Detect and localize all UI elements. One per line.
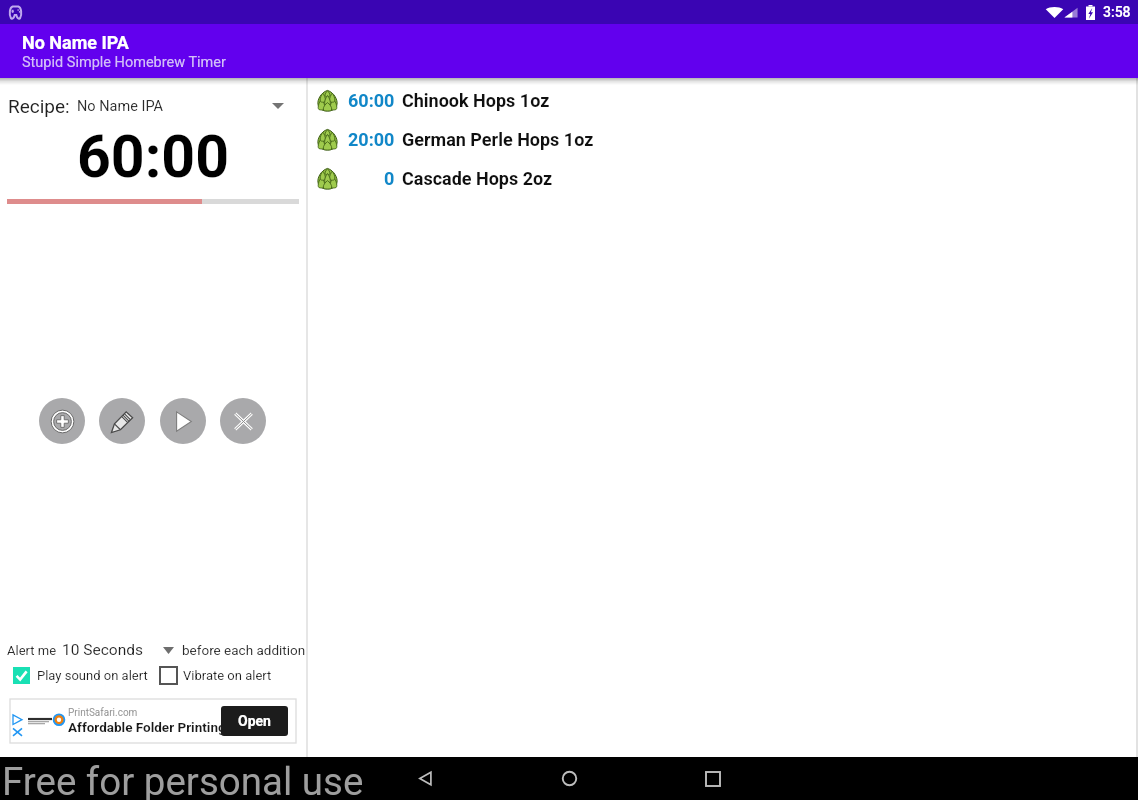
staticText: Vibrate on alert xyxy=(183,668,272,683)
button[interactable]: Add xyxy=(39,398,85,444)
button[interactable]: Recents xyxy=(685,757,741,800)
button[interactable]: PrintSafari.com xyxy=(10,699,296,743)
staticText: Alert me xyxy=(7,643,57,658)
button[interactable]: 60:00 xyxy=(308,81,1136,120)
button[interactable]: Home xyxy=(541,757,597,800)
staticText: 3:58 xyxy=(1103,4,1131,20)
button[interactable]: Edit xyxy=(99,398,145,444)
button[interactable]: Recipe: xyxy=(0,91,306,121)
staticText: Chinook Hops 1oz xyxy=(402,90,550,111)
staticText: No Name IPA xyxy=(77,98,164,115)
staticText: No Name IPA xyxy=(22,32,129,53)
button[interactable]: Open xyxy=(221,706,288,736)
staticText: 0 xyxy=(384,168,395,189)
staticText: before each addition xyxy=(182,642,306,658)
staticText: German Perle Hops 1oz xyxy=(402,129,594,150)
staticText: Cascade Hops 2oz xyxy=(402,168,553,189)
button[interactable]: Vibrate on alert xyxy=(160,667,272,684)
button[interactable]: 10 Seconds xyxy=(62,641,174,659)
staticText: 10 Seconds xyxy=(62,641,143,659)
button[interactable]: Play sound on alert xyxy=(13,667,160,684)
button[interactable]: 20:00 xyxy=(308,120,1136,159)
button[interactable]: Cancel xyxy=(220,398,266,444)
staticText: PrintSafari.com xyxy=(68,707,138,719)
staticText: Affordable Folder Printing xyxy=(68,719,226,735)
staticText: Open xyxy=(238,713,271,729)
staticText: 20:00 xyxy=(348,129,395,150)
button[interactable]: Back xyxy=(397,757,453,800)
staticText: 60:00 xyxy=(348,90,395,111)
staticText: 60:00 xyxy=(77,122,230,191)
staticText: Free for personal use xyxy=(2,759,364,800)
button[interactable]: Start xyxy=(160,398,206,444)
button[interactable]: 0 xyxy=(308,159,1136,198)
staticText: Recipe: xyxy=(8,95,70,117)
staticText: Stupid Simple Homebrew Timer xyxy=(22,54,226,71)
staticText: Play sound on alert xyxy=(37,668,148,683)
